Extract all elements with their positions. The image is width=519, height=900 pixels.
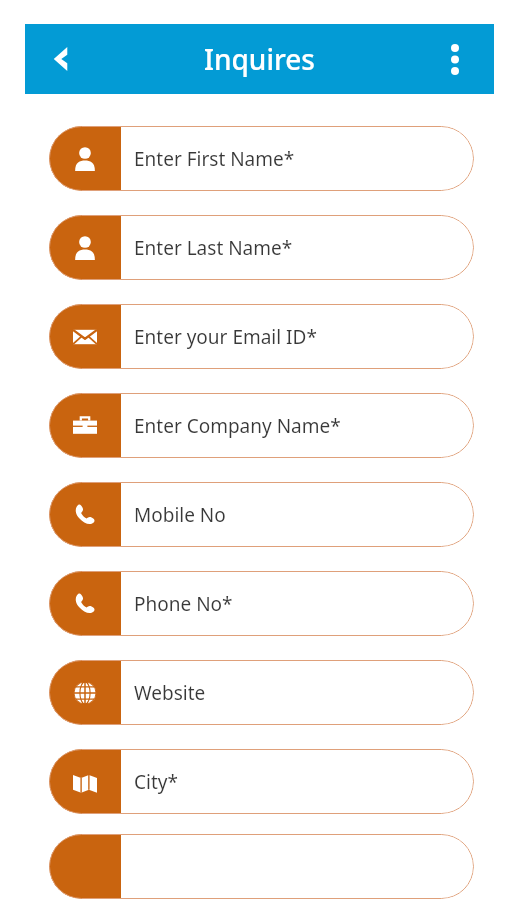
button[interactable]: Enter Company Name* xyxy=(49,393,474,458)
button[interactable]: Next field xyxy=(49,834,474,899)
button[interactable]: Back xyxy=(35,34,85,84)
staticText: Mobile No xyxy=(134,502,226,528)
button[interactable]: More options xyxy=(432,36,478,82)
staticText: Phone No* xyxy=(134,591,233,617)
button[interactable]: Website xyxy=(49,660,474,725)
button[interactable]: Mobile No xyxy=(49,482,474,547)
staticText: Inquires xyxy=(204,40,315,78)
button[interactable]: Enter Last Name* xyxy=(49,215,474,280)
staticText: Enter your Email ID* xyxy=(134,324,317,350)
staticText: Website xyxy=(134,680,206,706)
staticText: Enter Last Name* xyxy=(134,235,293,261)
button[interactable]: City* xyxy=(49,749,474,814)
button[interactable]: Enter your Email ID* xyxy=(49,304,474,369)
button[interactable]: Phone No* xyxy=(49,571,474,636)
staticText: City* xyxy=(134,769,178,795)
button[interactable]: Enter First Name* xyxy=(49,126,474,191)
staticText: Enter First Name* xyxy=(134,146,295,172)
staticText: Enter Company Name* xyxy=(134,413,341,439)
